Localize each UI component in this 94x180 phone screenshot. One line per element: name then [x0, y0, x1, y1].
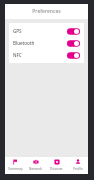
staticText: Summary — [8, 167, 23, 171]
button[interactable]: Network — [25, 157, 46, 174]
button[interactable]: Bluetooth — [9, 37, 84, 49]
button[interactable]: Discover — [46, 157, 67, 174]
button[interactable]: Profile — [67, 157, 88, 174]
button[interactable]: Toggle on — [67, 28, 80, 35]
other: Discover — [54, 159, 60, 165]
other: Network — [33, 159, 39, 165]
staticText: Preferences — [32, 8, 61, 15]
staticText: Profile — [73, 167, 83, 171]
button[interactable]: GPS — [9, 25, 84, 37]
staticText: NFC — [13, 52, 67, 58]
button[interactable]: Toggle on — [67, 40, 80, 47]
button[interactable]: Toggle on — [67, 52, 80, 59]
staticText: Network — [29, 167, 42, 171]
button[interactable]: Summary — [5, 157, 25, 174]
staticText: Discover — [50, 167, 63, 171]
button[interactable]: NFC — [9, 49, 84, 61]
staticText: GPS — [13, 28, 67, 34]
other: Summary — [12, 159, 18, 165]
other: Profile — [75, 159, 81, 165]
staticText: Bluetooth — [13, 40, 67, 46]
